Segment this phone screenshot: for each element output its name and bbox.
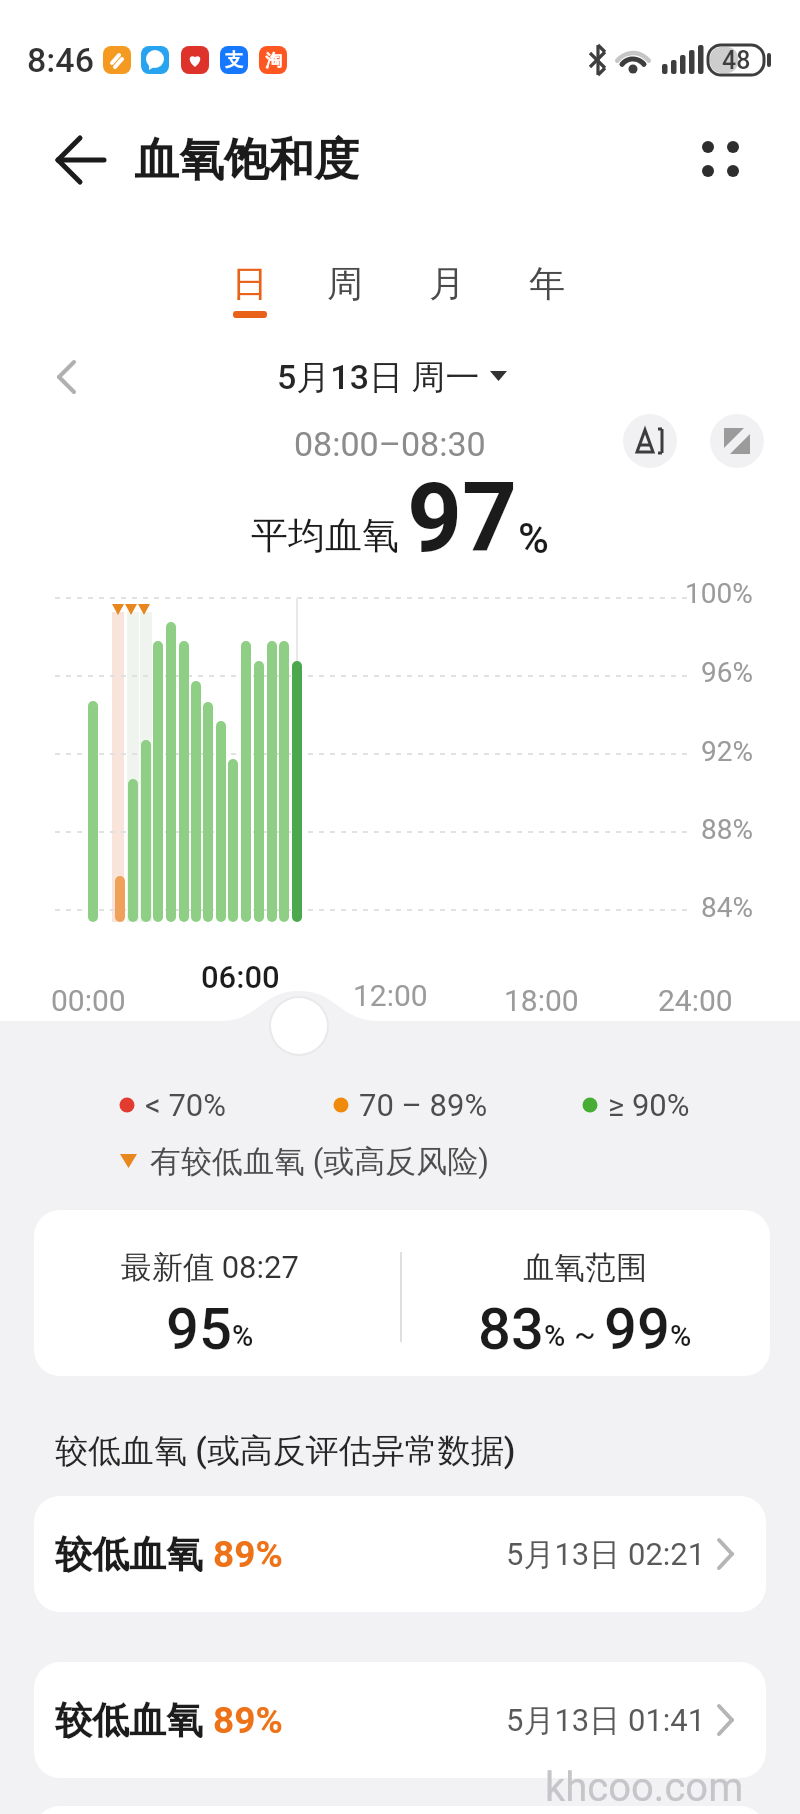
staticText: 06:00 <box>201 959 280 995</box>
staticText: 00:00 <box>51 983 126 1018</box>
staticText: 12:00 <box>353 978 428 1013</box>
staticText: 较低血氧 <box>55 1531 213 1578</box>
staticText: 有较低血氧 (或高反风险) <box>150 1142 490 1181</box>
staticText: % <box>518 514 549 563</box>
staticText: 88% <box>701 813 753 846</box>
staticText: 95 <box>166 1295 232 1359</box>
staticText: 08:00–08:30 <box>294 424 486 464</box>
staticText: 97 <box>407 462 518 575</box>
staticText: 月 <box>429 261 465 306</box>
staticText: 5月13日 周一 <box>277 356 480 399</box>
staticText: 支 <box>225 49 243 72</box>
button[interactable]: 周 <box>305 253 385 313</box>
button[interactable] <box>34 1496 766 1612</box>
staticText: < 70% <box>145 1087 226 1123</box>
button[interactable] <box>271 998 327 1054</box>
staticText: 92% <box>701 735 753 768</box>
button[interactable] <box>34 1662 766 1778</box>
staticText: 血氧范围 <box>523 1248 647 1287</box>
staticText: 较低血氧 <box>55 1697 213 1744</box>
staticText: 99 <box>604 1295 670 1359</box>
staticText: 18:00 <box>504 983 579 1018</box>
button[interactable]: 5月13日 周一 <box>228 347 528 407</box>
staticText: % <box>544 1319 566 1353</box>
staticText: 较低血氧 (或高反评估异常数据) <box>55 1430 516 1472</box>
staticText: 70 – 89% <box>359 1087 488 1123</box>
button[interactable] <box>623 414 677 468</box>
button[interactable]: 月 <box>407 253 487 313</box>
staticText: 年 <box>529 261 565 306</box>
button[interactable]: 年 <box>507 253 587 313</box>
staticText: 89% <box>213 1699 283 1742</box>
staticText: 日 <box>232 261 268 306</box>
button[interactable] <box>34 1210 770 1376</box>
staticText: 48 <box>722 46 751 75</box>
staticText: 淘 <box>265 50 282 71</box>
staticText: 周 <box>327 261 363 306</box>
staticText: 100% <box>685 577 753 610</box>
staticText: 83 <box>478 1295 544 1359</box>
button[interactable] <box>694 132 750 188</box>
staticText: % <box>670 1319 692 1353</box>
staticText: 24:00 <box>658 983 733 1018</box>
staticText: 平均血氧 <box>251 512 399 559</box>
staticText: 8:46 <box>27 40 94 80</box>
button[interactable] <box>710 414 764 468</box>
button[interactable]: 日 <box>210 253 290 313</box>
staticText: 最新值 08:27 <box>121 1248 299 1287</box>
staticText: ≥ 90% <box>608 1087 690 1123</box>
staticText: 血氧饱和度 <box>134 132 359 189</box>
staticText: % <box>232 1319 254 1353</box>
staticText: 89% <box>213 1533 283 1576</box>
staticText: khcoo.com <box>545 1764 744 1811</box>
staticText: 5月13日 01:41 <box>506 1701 706 1740</box>
staticText: ~ <box>566 1315 604 1353</box>
staticText: 96% <box>701 656 753 689</box>
button[interactable] <box>52 134 108 186</box>
staticText: 84% <box>701 891 753 924</box>
staticText: 5月13日 02:21 <box>506 1535 706 1574</box>
button[interactable] <box>50 360 84 396</box>
